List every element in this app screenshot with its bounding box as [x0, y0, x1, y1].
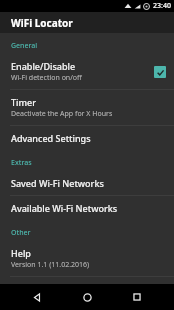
staticText: Advanced Settings [11, 132, 91, 144]
button[interactable]: Timer [0, 90, 174, 125]
button[interactable]: Saved Wi-Fi Networks [0, 171, 174, 195]
button[interactable]: Recent apps [124, 284, 150, 310]
button[interactable]: Help [0, 241, 174, 276]
staticText: Saved Wi-Fi Networks [11, 177, 104, 189]
other: Enable or disable Wi-Fi detection [154, 66, 166, 78]
staticText: Available Wi-Fi Networks [11, 202, 118, 214]
staticText: Enable/Disable [11, 60, 76, 72]
button[interactable]: Advanced Settings [0, 126, 174, 150]
staticText: Other [11, 228, 31, 238]
button[interactable]: Enable/Disable [0, 54, 174, 89]
staticText: General [11, 41, 38, 51]
staticText: Extras [11, 158, 32, 168]
staticText: Help [11, 247, 31, 259]
button[interactable]: Home [74, 284, 100, 310]
staticText: Wi-Fi detection on/off [11, 73, 82, 83]
staticText: WiFi Locator [11, 16, 73, 30]
staticText: Version 1.1 (11.02.2016) [11, 260, 90, 270]
staticText: 23:40 [153, 1, 171, 11]
staticText: Timer [11, 96, 36, 108]
button[interactable]: Back [24, 284, 50, 310]
staticText: Deactivate the App for X Hours [11, 109, 113, 119]
button[interactable]: Available Wi-Fi Networks [0, 196, 174, 220]
